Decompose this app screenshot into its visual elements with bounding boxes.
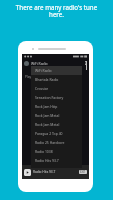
button[interactable]: Paragua 2 Top 40 [31,129,82,138]
staticText: Radio 25 Hardcore [35,140,65,145]
staticText: Radio 1038 [35,149,53,154]
button[interactable]: Sensation Factory [31,93,82,102]
staticText: Sensation Factory [35,95,64,100]
staticText: Crossice [35,86,49,91]
staticText: Play [25,75,32,79]
button[interactable]: Rock Jam Http [31,102,82,111]
staticText: WiFi Radio [31,61,48,66]
button[interactable]: Bhartala Radio [31,75,82,84]
staticText: Rock Jam Http [35,104,58,109]
button[interactable]: Radio 1038 [31,147,82,156]
button[interactable]: Play [22,165,89,179]
button[interactable]: Rock Jam Metal [31,111,82,120]
staticText: Radio Hits 93.7 [35,158,59,163]
staticText: Radio Hits 93.7 [33,170,56,174]
staticText: Rock Jam Metal [35,113,60,118]
button[interactable]: Radio 25 Hardcore [31,138,82,147]
staticText: There are many radio's tune here. [0,3,113,19]
button[interactable]: Crossice [31,84,82,93]
staticText: Bhartala Radio [35,77,59,82]
staticText: Rock Jam Metal [35,122,60,127]
other: More options [84,60,87,66]
staticText: EXIT [80,170,86,174]
button[interactable]: Radio Hits 93.7 [31,156,82,165]
other: Play [24,169,31,176]
button[interactable]: WiFi Radio [31,66,82,75]
staticText: WiFi Radio [35,68,52,73]
button[interactable]: Rock Jam Metal [31,120,82,129]
staticText: Paragua 2 Top 40 [35,131,63,136]
button[interactable]: EXIT [80,170,86,174]
